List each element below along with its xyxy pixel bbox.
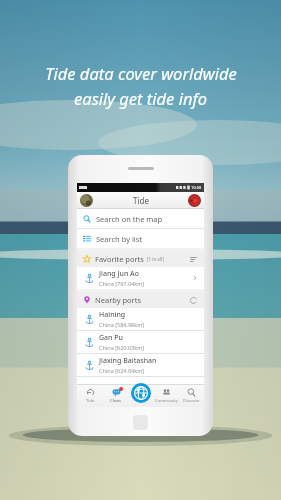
button[interactable]: Chats <box>103 384 129 407</box>
staticText: Discover <box>183 398 200 404</box>
staticText: Chats <box>110 398 122 404</box>
staticText: Jiang Jun Ao <box>99 269 139 279</box>
button[interactable]: Profile <box>80 194 93 207</box>
button[interactable]: Jiang Jun Ao <box>77 267 204 289</box>
staticText: 10:58 <box>191 185 202 190</box>
button[interactable]: Nearby ports <box>77 292 204 308</box>
staticText: Favorite ports <box>95 254 144 264</box>
staticText: Tide <box>133 195 149 206</box>
button[interactable]: Favorite ports <box>77 251 204 267</box>
staticText: Gan Pu <box>99 333 123 343</box>
button[interactable]: Discover <box>179 384 204 407</box>
button[interactable]: Community <box>154 384 179 407</box>
staticText: Jiaxing Baitashan <box>99 356 157 366</box>
button[interactable]: Haining <box>77 308 204 330</box>
staticText: China [584.98km] <box>99 321 145 328</box>
staticText: Tide <box>86 398 95 404</box>
staticText: Tide data cover worldwide <box>45 62 237 84</box>
button[interactable]: Tide chart <box>188 194 201 207</box>
staticText: China [797.04km] <box>99 280 145 287</box>
button[interactable]: Tide <box>77 384 103 407</box>
staticText: China [624.64km] <box>99 367 145 374</box>
staticText: Community <box>155 398 178 404</box>
staticText: Search by list <box>96 234 143 244</box>
staticText: China [620.03km] <box>99 344 145 351</box>
button[interactable]: Explore <box>131 383 151 403</box>
staticText: Search on the map <box>96 214 163 224</box>
button[interactable]: Search on the map <box>77 209 204 228</box>
staticText: Haining <box>99 310 126 320</box>
button[interactable]: Jiaxing Baitashan <box>77 354 204 376</box>
button[interactable]: Search by list <box>77 229 204 248</box>
staticText: Nearby ports <box>95 295 142 305</box>
button[interactable]: Sort <box>189 255 198 264</box>
button[interactable]: Refresh <box>189 296 198 305</box>
staticText: easily get tide info <box>74 87 207 109</box>
staticText: [1 in all] <box>147 256 164 262</box>
button[interactable]: Gan Pu <box>77 331 204 353</box>
